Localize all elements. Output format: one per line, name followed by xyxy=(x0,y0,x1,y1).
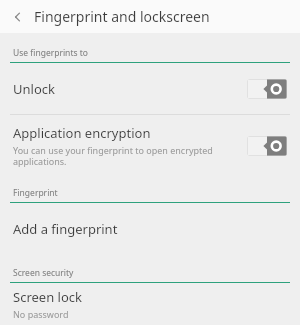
button[interactable]: Unlock xyxy=(0,63,300,114)
staticText: Fingerprint and lockscreen xyxy=(34,7,210,26)
button[interactable]: Toggle xyxy=(247,136,287,156)
button[interactable]: Toggle xyxy=(247,79,287,99)
button[interactable]: Add a fingerprint xyxy=(0,203,300,254)
staticText: Application encryption xyxy=(13,124,151,142)
staticText: Screen lock xyxy=(13,288,82,306)
staticText: Use fingerprints to xyxy=(13,47,88,59)
button[interactable]: Application encryption xyxy=(0,115,300,176)
staticText: You can use your fingerprint to open enc… xyxy=(13,144,213,167)
staticText: Fingerprint xyxy=(13,187,58,199)
staticText: Screen security xyxy=(13,267,74,279)
staticText: Add a fingerprint xyxy=(13,220,118,238)
staticText: No password xyxy=(13,308,69,320)
staticText: Unlock xyxy=(13,80,55,98)
button[interactable]: Screen lock xyxy=(0,283,300,325)
button[interactable]: Back xyxy=(8,7,28,27)
